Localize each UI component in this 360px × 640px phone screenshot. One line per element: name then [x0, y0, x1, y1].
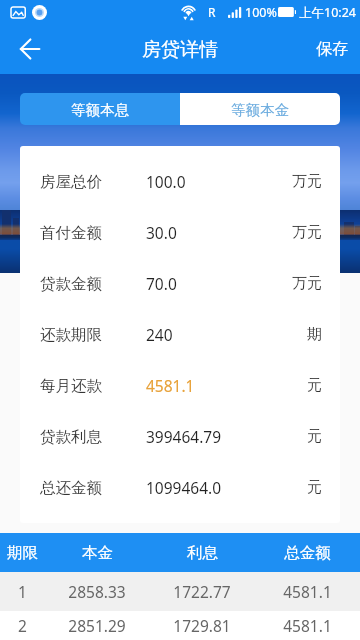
staticText: 元	[307, 478, 322, 497]
staticText: 万元	[292, 223, 322, 242]
button[interactable]: Back	[0, 24, 60, 74]
button[interactable]: 等额本金	[180, 93, 340, 125]
staticText: 100%	[245, 4, 277, 21]
staticText: 元	[307, 427, 322, 446]
staticText: 首付金额	[40, 223, 146, 243]
button[interactable]: 保存	[302, 24, 360, 74]
staticText: 1722.77	[173, 581, 231, 602]
staticText: 1099464.0	[146, 477, 307, 498]
staticText: 2	[18, 615, 27, 636]
staticText: 上午10:24	[299, 4, 356, 21]
staticText: 每月还款	[40, 376, 146, 396]
staticText: 399464.79	[146, 426, 307, 447]
staticText: 期	[307, 325, 322, 344]
staticText: 2851.29	[68, 615, 126, 636]
button[interactable]: 2	[0, 611, 360, 640]
staticText: 240	[146, 324, 307, 345]
staticText: 4581.1	[283, 615, 332, 636]
staticText: 还款期限	[40, 325, 146, 345]
staticText: 利息	[187, 543, 218, 563]
staticText: 万元	[292, 172, 322, 191]
staticText: 保存	[316, 39, 348, 59]
staticText: R	[208, 4, 216, 20]
staticText: 本金	[82, 543, 113, 563]
staticText: 4581.1	[283, 581, 332, 602]
staticText: 总还金额	[40, 478, 146, 498]
staticText: 1	[18, 581, 27, 602]
staticText: 贷款利息	[40, 427, 146, 447]
staticText: 万元	[292, 274, 322, 293]
staticText: 30.0	[146, 222, 292, 243]
button[interactable]: 1	[0, 572, 360, 611]
staticText: 100.0	[146, 171, 292, 192]
staticText: 期限	[7, 543, 38, 563]
staticText: 元	[307, 376, 322, 395]
staticText: 70.0	[146, 273, 292, 294]
button[interactable]: 等额本息	[20, 93, 180, 125]
staticText: 房贷详情	[142, 38, 218, 62]
staticText: 贷款金额	[40, 274, 146, 294]
staticText: 等额本金	[231, 101, 289, 119]
staticText: 等额本息	[71, 101, 129, 119]
staticText: 总金额	[284, 543, 331, 563]
staticText: 1729.81	[173, 615, 231, 636]
staticText: 2858.33	[68, 581, 126, 602]
staticText: 4581.1	[146, 375, 307, 396]
staticText: 房屋总价	[40, 172, 146, 192]
